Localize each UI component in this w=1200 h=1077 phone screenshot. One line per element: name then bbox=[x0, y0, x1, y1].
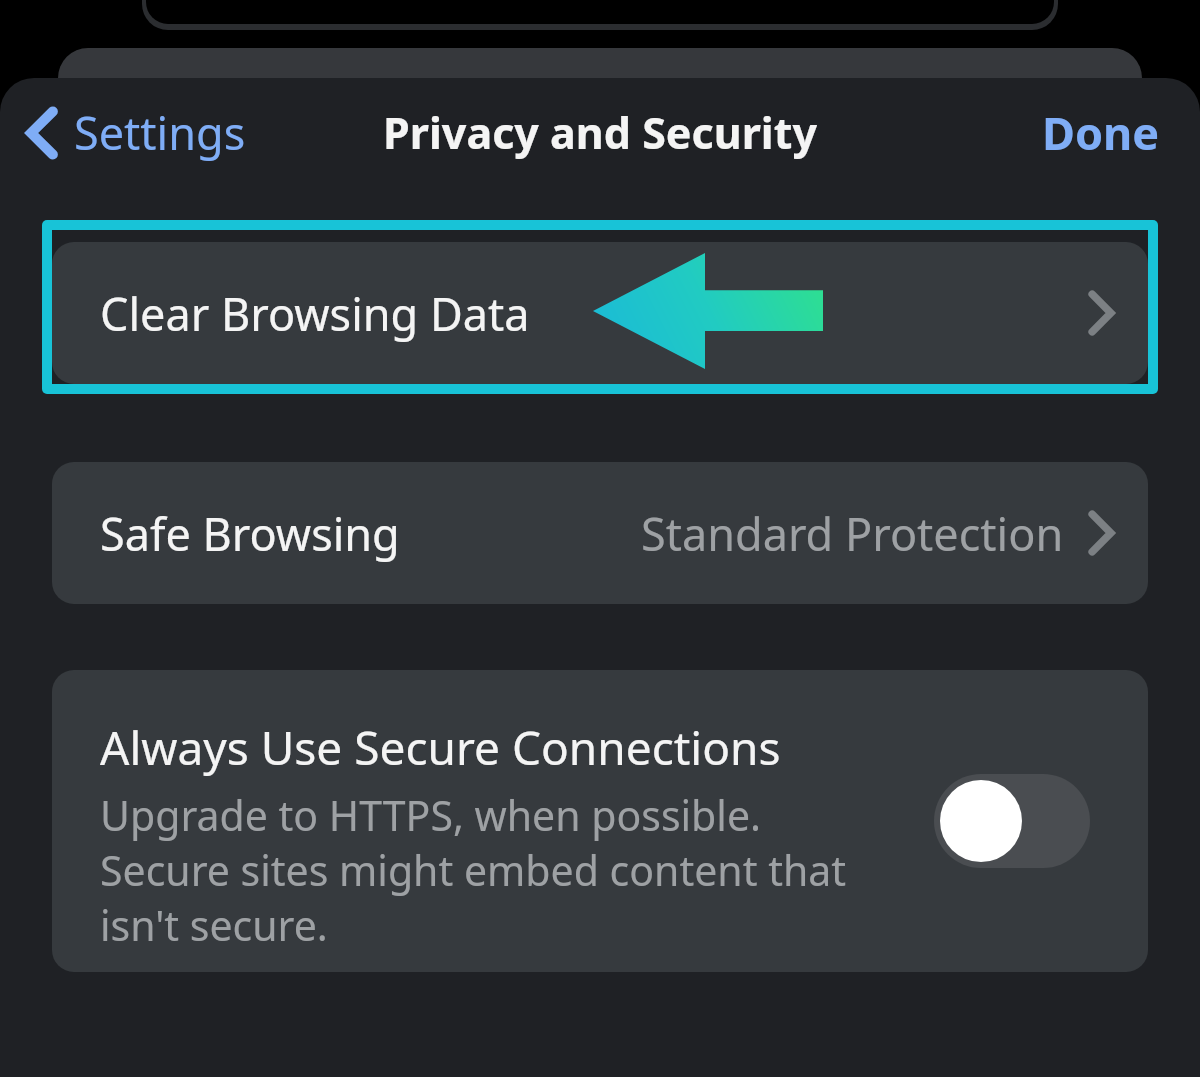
staticText: Standard Protection bbox=[641, 503, 1064, 564]
staticText: Upgrade to HTTPS, when possible. Secure … bbox=[100, 787, 858, 953]
button[interactable]: Done bbox=[1034, 92, 1168, 173]
button[interactable]: Safe Browsing bbox=[52, 462, 1148, 604]
staticText: Done bbox=[1042, 102, 1160, 163]
staticText: Settings bbox=[74, 102, 246, 163]
staticText: Privacy and Security bbox=[383, 103, 817, 162]
button[interactable]: Settings bbox=[20, 94, 252, 171]
button[interactable]: Always Use Secure Connections bbox=[52, 670, 1148, 972]
staticText: Always Use Secure Connections bbox=[100, 716, 781, 779]
button[interactable]: Always Use Secure Connections, off bbox=[934, 774, 1090, 868]
staticText: Clear Browsing Data bbox=[100, 283, 530, 344]
button[interactable]: Clear Browsing Data bbox=[52, 242, 1148, 384]
staticText: Safe Browsing bbox=[100, 503, 400, 564]
